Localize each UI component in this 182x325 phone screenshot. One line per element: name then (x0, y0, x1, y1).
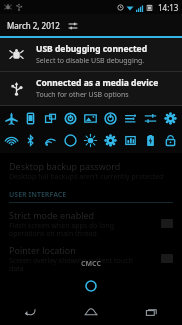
button[interactable]: Mobile data (40, 131, 60, 150)
staticText: USER INTERFACE (9, 190, 67, 200)
staticText: 14:13 (158, 2, 179, 13)
button[interactable]: Wallpaper (80, 109, 100, 128)
button[interactable]: Timer (60, 109, 80, 128)
staticText: Desktop backup password (9, 160, 121, 172)
button[interactable]: Sync (100, 131, 120, 150)
staticText: March 2, 2012 (7, 20, 60, 31)
staticText: Desktop full backups aren't currently pr… (9, 172, 164, 182)
button[interactable]: Device (21, 109, 40, 128)
button[interactable]: Data usage (120, 109, 140, 128)
button[interactable]: Battery (140, 131, 160, 150)
button[interactable]: Back (0, 299, 60, 325)
staticText: Connected as a media device (36, 77, 159, 89)
button[interactable]: USB debugging connected (0, 38, 182, 71)
button[interactable]: Auto rotate (40, 109, 60, 128)
button[interactable]: Home (60, 299, 121, 325)
staticText: Select to disable USB debugging. (36, 56, 145, 66)
button[interactable]: Location (60, 131, 80, 150)
staticText: Flash screen when apps do long operation… (9, 221, 115, 238)
staticText: CMCC (81, 259, 101, 269)
button[interactable]: Wi-Fi (2, 131, 21, 150)
staticText: Screen overlay showing current touch dat… (9, 256, 133, 273)
button[interactable]: Quick settings (66, 19, 79, 32)
button[interactable]: Recent apps (121, 299, 182, 325)
button[interactable]: Apps (120, 131, 140, 150)
button[interactable]: Power (100, 109, 120, 128)
button[interactable]: Bluetooth (21, 131, 40, 150)
button[interactable]: Brightness (80, 131, 100, 150)
button[interactable]: Close notification shade (80, 275, 102, 297)
button[interactable]: Desktop backup password (9, 160, 173, 182)
button[interactable]: Strict mode enabled (9, 209, 173, 238)
staticText: Touch for other USB options (36, 90, 129, 100)
button[interactable]: Connected as a media device (0, 72, 182, 105)
button[interactable]: Pointer location (9, 244, 173, 273)
staticText: Pointer location (9, 244, 76, 256)
button[interactable]: Settings (160, 109, 180, 128)
staticText: USB debugging connected (36, 43, 148, 55)
button[interactable]: Screen lock (160, 131, 180, 150)
button[interactable]: Settings sliders (140, 109, 160, 128)
button[interactable]: Airplane mode (2, 109, 21, 128)
staticText: Strict mode enabled (9, 209, 95, 221)
